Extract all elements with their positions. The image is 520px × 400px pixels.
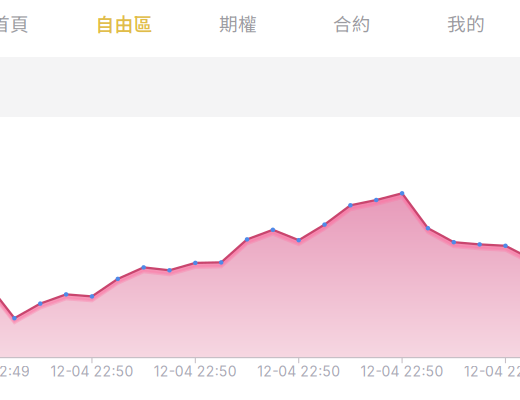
button[interactable]: 合約 xyxy=(295,0,409,51)
button[interactable]: 首頁 xyxy=(0,0,67,51)
staticText: 12-04 22:50 xyxy=(361,363,444,380)
button[interactable]: 我的 xyxy=(409,0,520,51)
staticText: 首頁 xyxy=(0,9,29,36)
staticText: 12-04 22:50 xyxy=(50,363,133,380)
staticText: 12-04 22:50 xyxy=(154,363,237,380)
staticText: 合約 xyxy=(333,9,371,36)
staticText: 12-04 22:50 xyxy=(257,363,340,380)
staticText: 我的 xyxy=(447,9,485,36)
staticText: 12-04 22:49 xyxy=(0,363,30,380)
staticText: 自由區 xyxy=(95,9,152,36)
button[interactable]: 期權 xyxy=(181,0,295,51)
staticText: 期權 xyxy=(219,9,257,36)
button[interactable]: 自由區 xyxy=(67,0,181,51)
staticText: 12-04 22:50 xyxy=(464,363,520,380)
